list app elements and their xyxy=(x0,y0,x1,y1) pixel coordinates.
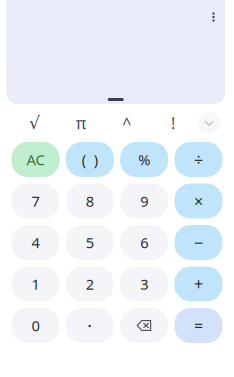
button[interactable]: 8 xyxy=(66,183,114,218)
button[interactable]: 1 xyxy=(11,266,59,301)
staticText: 2 xyxy=(86,274,94,294)
staticText: ( ) xyxy=(82,150,98,169)
staticText: − xyxy=(194,232,203,253)
staticText: % xyxy=(138,150,150,169)
staticText: 0 xyxy=(31,316,39,335)
button[interactable]: ! xyxy=(150,111,196,135)
button[interactable]: 0 xyxy=(11,308,59,343)
button[interactable]: AC xyxy=(11,142,59,177)
button[interactable]: 7 xyxy=(11,183,59,218)
staticText: · xyxy=(87,314,92,337)
staticText: AC xyxy=(26,150,44,169)
button[interactable]: √ xyxy=(11,111,58,135)
button[interactable]: · xyxy=(66,308,114,343)
button[interactable]: 5 xyxy=(66,225,114,260)
staticText: ÷ xyxy=(194,149,203,170)
staticText: 8 xyxy=(86,191,94,211)
staticText: 4 xyxy=(31,233,39,252)
button[interactable]: π xyxy=(58,111,104,135)
button[interactable]: 6 xyxy=(120,225,168,260)
staticText: √ xyxy=(29,113,40,133)
button[interactable]: 9 xyxy=(120,183,168,218)
staticText: 3 xyxy=(140,274,148,294)
staticText: ^ xyxy=(122,112,131,134)
staticText: ! xyxy=(171,112,175,134)
button[interactable]: ÷ xyxy=(174,142,222,177)
button[interactable]: 4 xyxy=(11,225,59,260)
button[interactable]: More options xyxy=(202,6,224,28)
staticText: 7 xyxy=(31,191,39,211)
button[interactable]: More functions xyxy=(198,112,220,134)
staticText: = xyxy=(194,315,203,336)
staticText: 6 xyxy=(140,233,148,252)
button[interactable]: − xyxy=(174,225,222,260)
button[interactable]: Delete xyxy=(120,308,168,343)
button[interactable]: 3 xyxy=(120,266,168,301)
button[interactable]: ^ xyxy=(104,111,150,135)
button[interactable]: % xyxy=(120,142,168,177)
staticText: 5 xyxy=(86,233,94,252)
button[interactable]: = xyxy=(174,308,222,343)
button[interactable]: × xyxy=(174,183,222,218)
button[interactable]: 2 xyxy=(66,266,114,301)
button[interactable]: ( ) xyxy=(66,142,114,177)
staticText: π xyxy=(76,112,86,134)
staticText: 1 xyxy=(31,274,39,294)
staticText: × xyxy=(194,190,203,212)
staticText: 9 xyxy=(140,191,148,211)
staticText: + xyxy=(194,273,203,295)
button[interactable]: + xyxy=(174,266,222,301)
